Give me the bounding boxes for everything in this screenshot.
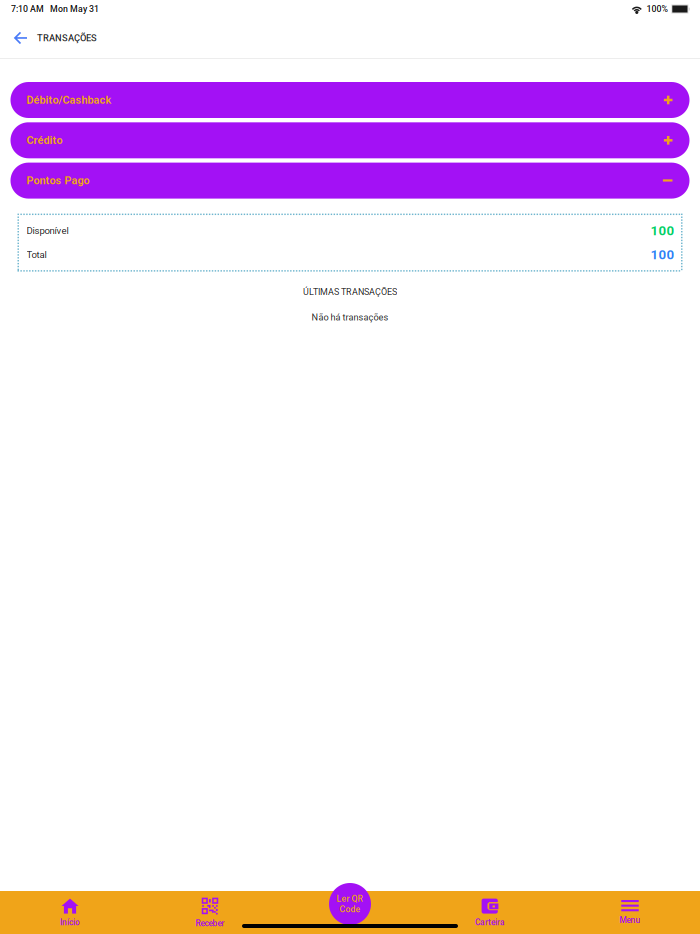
button[interactable]: Carteira — [420, 891, 560, 934]
staticText: Ler QR — [336, 894, 363, 904]
staticText: 7:10 AM Mon May 31 — [11, 4, 99, 14]
staticText: Carteira — [475, 918, 505, 927]
staticText: 100 — [650, 223, 674, 238]
staticText: Total — [26, 249, 46, 260]
button[interactable]: Menu — [560, 891, 700, 934]
button[interactable]: Back — [10, 28, 31, 48]
button[interactable]: Início — [0, 891, 140, 934]
staticText: Crédito — [26, 134, 62, 147]
staticText: 100 — [650, 247, 674, 262]
staticText: Débito/Cashback — [26, 94, 111, 106]
button[interactable]: Ler QR — [329, 883, 371, 925]
staticText: Receber — [195, 918, 224, 928]
staticText: Disponível — [26, 225, 68, 236]
staticText: Menu — [619, 915, 640, 925]
staticText: Não há transações — [311, 312, 388, 323]
button[interactable]: Receber — [140, 891, 280, 934]
button[interactable]: Débito/Cashback — [10, 82, 689, 118]
staticText: 100% — [646, 4, 667, 14]
staticText: ÚLTIMAS TRANSAÇÕES — [303, 287, 397, 297]
button[interactable]: Crédito — [10, 122, 689, 158]
staticText: Pontos Pago — [26, 174, 89, 187]
staticText: TRANSAÇÕES — [37, 32, 97, 43]
staticText: Início — [60, 918, 80, 927]
staticText: Code — [339, 904, 360, 914]
button[interactable]: Pontos Pago — [10, 163, 689, 199]
